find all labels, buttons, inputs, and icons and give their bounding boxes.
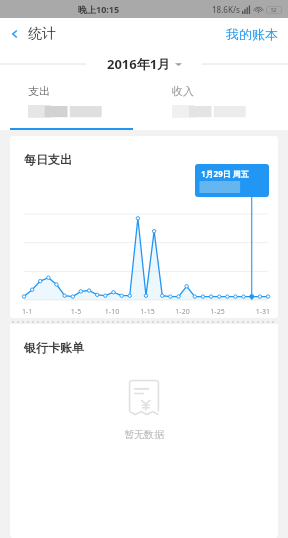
button[interactable]: 我的账本: [216, 20, 288, 48]
button[interactable]: 每日支出: [10, 136, 278, 318]
staticText: 银行卡账单: [24, 340, 84, 355]
staticText: 18.6K/s: [212, 4, 240, 15]
staticText: 1-1: [22, 307, 58, 317]
staticText: 收入: [172, 84, 194, 98]
button[interactable]: 收入: [144, 78, 288, 130]
staticText: 支出: [28, 84, 50, 98]
staticText: 1-25: [200, 307, 235, 317]
staticText: 1月29日 周五: [201, 168, 249, 179]
button[interactable]: 2016年1月: [93, 52, 196, 76]
staticText: 1-20: [165, 307, 200, 317]
button[interactable]: Back: [0, 21, 64, 47]
staticText: 52: [271, 7, 277, 14]
staticText: 1-31: [235, 307, 270, 317]
staticText: 1-15: [130, 307, 165, 317]
button[interactable]: 银行卡账单: [10, 324, 278, 538]
staticText: 晚上10:15: [78, 3, 120, 15]
staticText: 统计: [28, 25, 56, 43]
staticText: 暂无数据: [124, 428, 164, 441]
button[interactable]: 支出: [0, 78, 144, 130]
staticText: 1-10: [94, 307, 130, 317]
staticText: 2016年1月: [107, 55, 171, 73]
staticText: 1-5: [58, 307, 94, 317]
staticText: 每日支出: [24, 152, 72, 167]
